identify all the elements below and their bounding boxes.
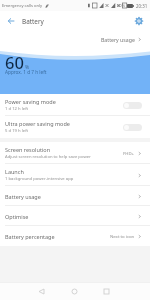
button[interactable]: Screen resolution (0, 142, 150, 164)
button[interactable]: Power saving mode (0, 94, 150, 116)
staticText: Optimise (5, 213, 29, 220)
staticText: 1 background power-intensive app (5, 176, 74, 182)
button[interactable]: Back (0, 11, 22, 31)
staticText: % (25, 64, 30, 71)
button[interactable]: Toggle (123, 102, 142, 109)
staticText: 1 d 12 h left (5, 106, 29, 112)
staticText: Screen resolution (5, 146, 51, 153)
button[interactable]: Home (60, 282, 88, 300)
staticText: Power saving mode (5, 98, 56, 105)
staticText: Next to icon (110, 233, 135, 239)
staticText: Approx. 1 d 7 h left (5, 69, 47, 75)
staticText: Battery (22, 17, 44, 26)
staticText: Battery usage (101, 36, 135, 43)
button[interactable]: Battery percentage (0, 226, 150, 246)
staticText: 20:31 (136, 3, 148, 9)
button[interactable]: Recent apps (92, 282, 120, 300)
staticText: FHD+ (123, 150, 135, 156)
button[interactable]: Battery usage (0, 186, 150, 206)
button[interactable]: Back (27, 282, 55, 300)
staticText: Ultra power saving mode (5, 120, 70, 127)
staticText: Adjust screen resolution to help save po… (5, 154, 91, 160)
button[interactable]: Launch (0, 164, 150, 186)
button[interactable]: Settings (128, 11, 150, 31)
staticText: Emergency calls only (2, 3, 43, 9)
staticText: Launch (5, 168, 24, 175)
staticText: Battery percentage (5, 233, 55, 240)
staticText: 60% (117, 3, 126, 9)
staticText: Battery usage (5, 193, 41, 200)
button[interactable]: Optimise (0, 206, 150, 226)
button[interactable]: Ultra power saving mode (0, 116, 150, 138)
staticText: 60 (5, 51, 24, 73)
button[interactable]: Battery usage (100, 35, 143, 44)
staticText: 5 d 19 h left (5, 128, 29, 134)
button[interactable]: Toggle (123, 124, 142, 131)
